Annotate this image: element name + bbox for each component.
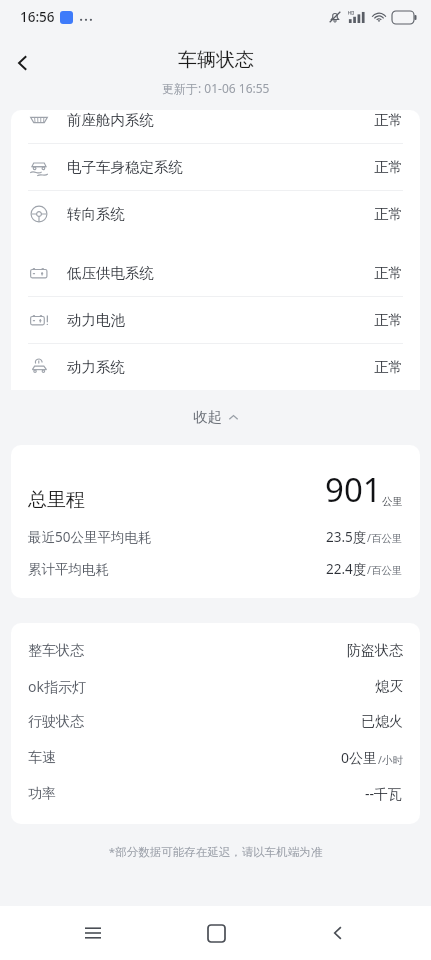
staticText: /百公里 [367, 531, 403, 545]
button[interactable]: 转向系统 [11, 191, 420, 237]
staticText: 已熄火 [361, 713, 403, 731]
staticText: 最近50公里平均电耗 [28, 528, 152, 546]
button[interactable]: 电子车身稳定系统 [11, 144, 420, 191]
staticText: 动力电池 [67, 311, 125, 329]
staticText: 901 [325, 467, 382, 512]
staticText: 累计平均电耗 [28, 561, 109, 578]
staticText: 动力系统 [67, 358, 125, 376]
staticText: /百公里 [367, 563, 403, 577]
button[interactable]: Menu [63, 906, 123, 960]
staticText: 正常 [374, 311, 403, 329]
staticText: 23.5度 [326, 528, 367, 546]
button[interactable]: 前座舱内系统 [11, 110, 420, 144]
button[interactable]: Back [308, 906, 368, 960]
staticText: 更新于: 01-06 16:55 [162, 80, 270, 96]
staticText: 功率 [28, 785, 56, 803]
staticText: 车辆状态 [178, 48, 254, 72]
button[interactable]: 动力系统 [11, 344, 420, 390]
button[interactable]: 功率 [28, 784, 403, 803]
button[interactable]: 行驶状态 [28, 713, 403, 731]
staticText: 收起 [193, 408, 222, 426]
button[interactable]: 收起 [0, 390, 431, 444]
staticText: *部分数据可能存在延迟，请以车机端为准 [0, 844, 431, 860]
staticText: 22.4度 [326, 560, 367, 578]
staticText: 正常 [374, 264, 403, 282]
staticText: 整车状态 [28, 642, 84, 660]
staticText: 公里 [382, 495, 403, 508]
staticText: 前座舱内系统 [67, 111, 154, 129]
staticText: 防盗状态 [347, 642, 403, 660]
staticText: 正常 [374, 158, 403, 176]
staticText: 正常 [374, 111, 403, 129]
staticText: 正常 [374, 358, 403, 376]
staticText: 车速 [28, 749, 56, 767]
staticText: /小时 [378, 753, 403, 767]
button[interactable]: 车速 [28, 748, 403, 767]
button[interactable]: 动力电池 [11, 297, 420, 344]
staticText: 行驶状态 [28, 713, 84, 731]
staticText: 低压供电系统 [67, 264, 154, 282]
staticText: 电子车身稳定系统 [67, 158, 183, 176]
button[interactable]: 低压供电系统 [11, 250, 420, 297]
staticText: 转向系统 [67, 205, 125, 223]
button[interactable]: Home [186, 906, 246, 960]
button[interactable]: Back [0, 40, 46, 86]
staticText: 0公里 [341, 748, 378, 767]
button[interactable]: ok指示灯 [28, 677, 403, 696]
staticText: ok指示灯 [28, 677, 86, 696]
staticText: 总里程 [28, 488, 85, 512]
button[interactable]: 整车状态 [28, 642, 403, 660]
staticText: 正常 [374, 205, 403, 223]
staticText: 16:56 [20, 8, 55, 26]
staticText: 熄灭 [375, 678, 403, 696]
staticText: --千瓦 [365, 784, 403, 803]
